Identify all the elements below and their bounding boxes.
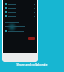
button[interactable] (5, 10, 35, 14)
button[interactable] (28, 37, 35, 40)
staticText: Share and collaborate (0, 63, 64, 67)
button[interactable] (5, 6, 35, 10)
button[interactable] (5, 14, 35, 18)
button[interactable] (5, 2, 35, 6)
